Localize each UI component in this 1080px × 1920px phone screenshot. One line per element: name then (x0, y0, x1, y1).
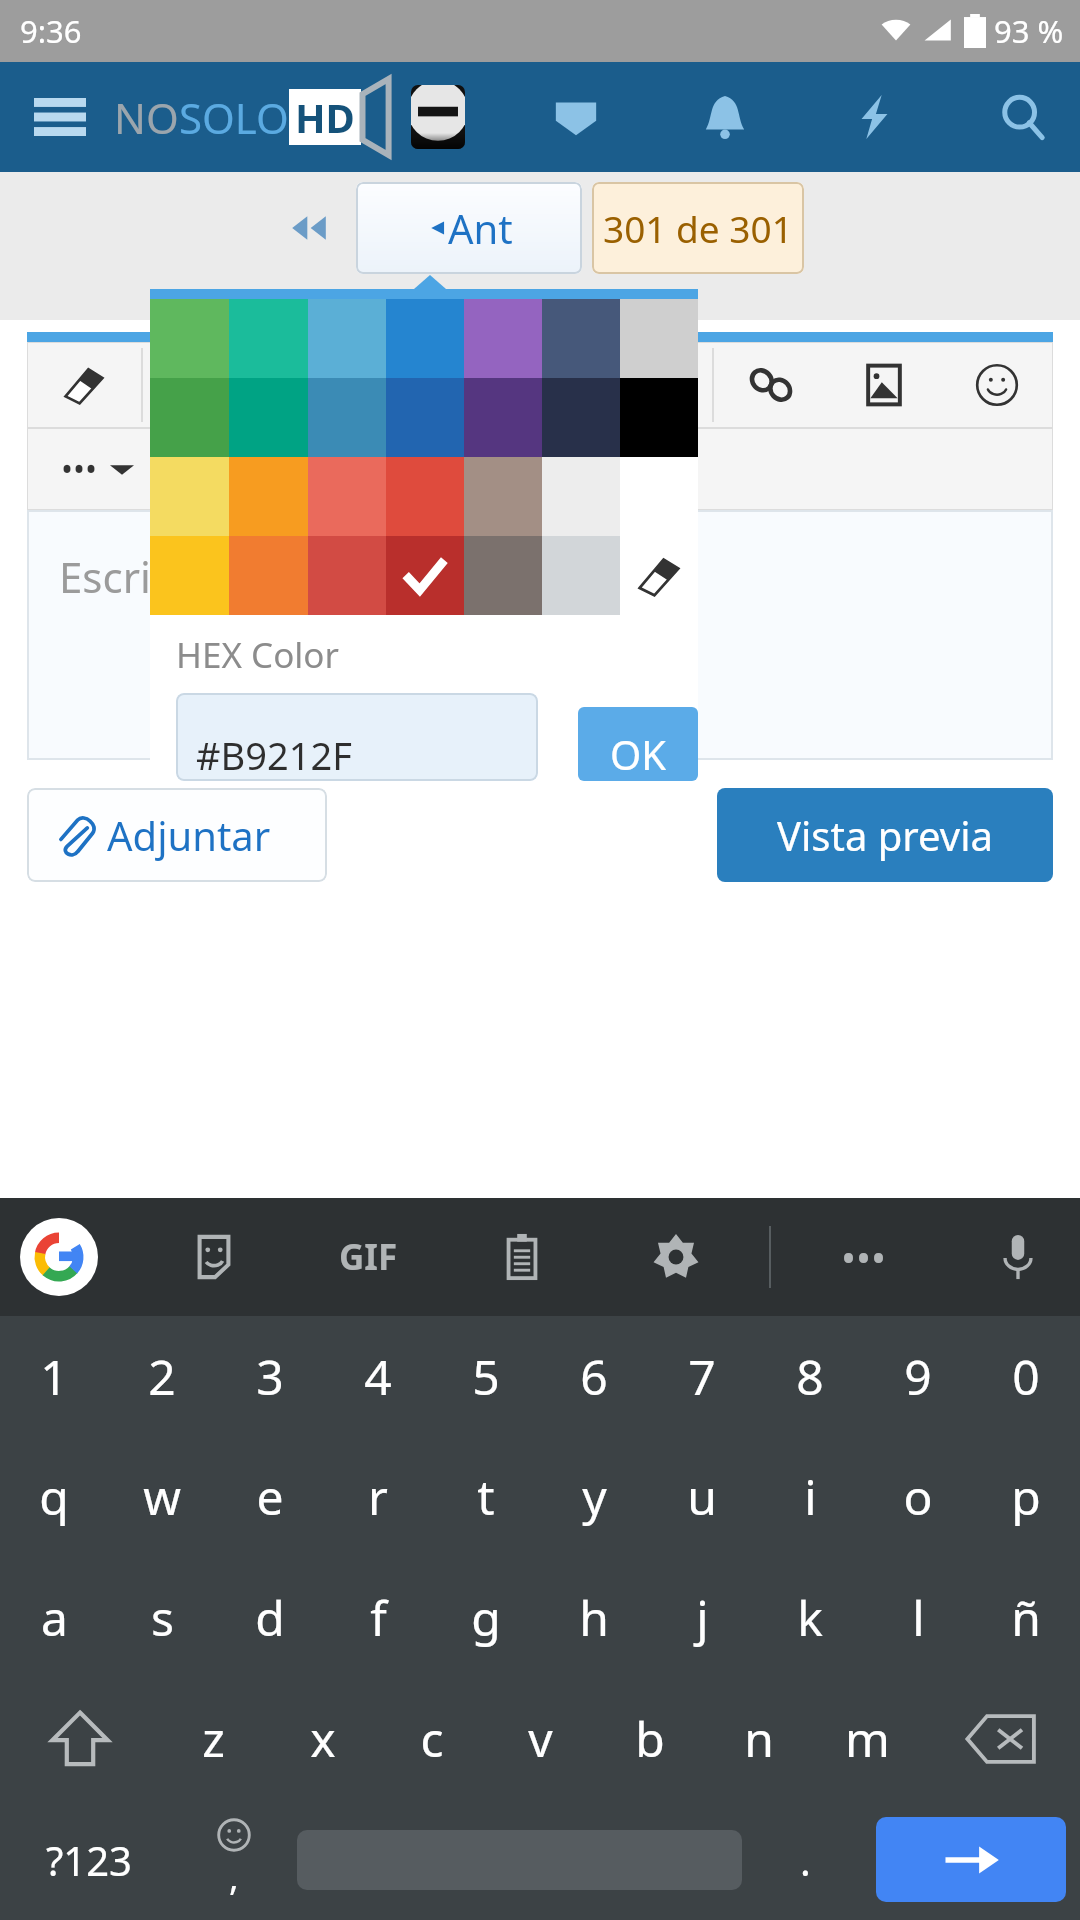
button[interactable]: U (371, 342, 484, 428)
button[interactable]: 3 (216, 1316, 324, 1436)
button[interactable]: Text color (486, 342, 599, 428)
button[interactable]: c (377, 1678, 486, 1799)
button[interactable]: #B9212F (176, 693, 538, 781)
button[interactable]: Eraser (27, 342, 141, 428)
button[interactable]: Profile (411, 85, 465, 149)
button[interactable]: p (972, 1436, 1080, 1557)
button[interactable]: Activity (835, 78, 913, 156)
button[interactable]: o (864, 1436, 972, 1557)
button[interactable]: . (748, 1799, 862, 1920)
button[interactable]: List (169, 428, 279, 510)
button[interactable]: ñ (972, 1557, 1080, 1678)
button[interactable]: Backspace (922, 1678, 1080, 1799)
button[interactable]: Emoji (940, 342, 1053, 428)
button[interactable]: 6 (540, 1316, 648, 1436)
button[interactable]: h (540, 1557, 648, 1678)
button[interactable]: Emoji and comma (177, 1799, 291, 1920)
button[interactable]: d (216, 1557, 324, 1678)
button[interactable]: Font size (599, 342, 712, 428)
button[interactable]: 9 (864, 1316, 972, 1436)
button[interactable]: 5 (432, 1316, 540, 1436)
button[interactable]: Search (984, 78, 1062, 156)
button[interactable]: 301 de 301 (592, 182, 804, 274)
button[interactable]: 1 (0, 1316, 108, 1436)
button[interactable]: v (486, 1678, 595, 1799)
button[interactable]: j (648, 1557, 756, 1678)
button[interactable]: ?123 (0, 1799, 177, 1920)
button[interactable]: m (813, 1678, 922, 1799)
button[interactable]: w (108, 1436, 216, 1557)
button[interactable]: OK (578, 707, 698, 781)
button[interactable]: Voice input (980, 1219, 1056, 1295)
button[interactable]: t (432, 1436, 540, 1557)
button[interactable]: a (0, 1557, 108, 1678)
button[interactable]: GIF (330, 1219, 406, 1295)
button[interactable]: NO (114, 79, 391, 155)
button[interactable]: I (257, 342, 371, 428)
button[interactable]: Google (20, 1218, 98, 1296)
button[interactable]: More (826, 1219, 902, 1295)
button[interactable]: Link (714, 342, 827, 428)
button[interactable]: Color swatch (386, 536, 464, 615)
button[interactable]: Ant (356, 182, 582, 274)
button[interactable]: x (268, 1678, 377, 1799)
button[interactable]: Shift (0, 1678, 159, 1799)
button[interactable]: Image (827, 342, 940, 428)
button[interactable]: n (704, 1678, 813, 1799)
button[interactable]: Color swatch (620, 536, 698, 615)
button[interactable]: i (756, 1436, 864, 1557)
button[interactable]: Notifications (686, 78, 764, 156)
button[interactable]: l (864, 1557, 972, 1678)
button[interactable]: More options (27, 428, 167, 510)
button[interactable]: y (540, 1436, 648, 1557)
button[interactable]: Enter (876, 1817, 1066, 1902)
button[interactable]: s (108, 1557, 216, 1678)
button[interactable]: Menu (24, 81, 96, 153)
button[interactable]: 2 (108, 1316, 216, 1436)
button[interactable]: Stickers (176, 1219, 252, 1295)
button[interactable]: B (143, 342, 257, 428)
button[interactable]: First page (276, 195, 342, 261)
button[interactable]: f (324, 1557, 432, 1678)
button[interactable]: q (0, 1436, 108, 1557)
button[interactable]: Settings (638, 1219, 714, 1295)
button[interactable]: 0 (972, 1316, 1080, 1436)
button[interactable]: 4 (324, 1316, 432, 1436)
button[interactable]: 8 (756, 1316, 864, 1436)
button[interactable]: Messages (537, 78, 615, 156)
button[interactable]: Clipboard (484, 1219, 560, 1295)
button[interactable]: Adjuntar (27, 788, 327, 882)
button[interactable]: 7 (648, 1316, 756, 1436)
button[interactable]: u (648, 1436, 756, 1557)
button[interactable]: Vista previa (717, 788, 1053, 882)
button[interactable]: k (756, 1557, 864, 1678)
button[interactable]: z (159, 1678, 268, 1799)
button[interactable]: Escribe (27, 510, 1053, 760)
